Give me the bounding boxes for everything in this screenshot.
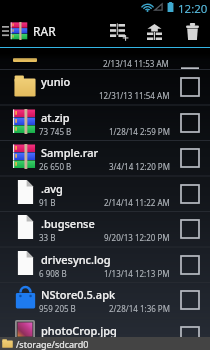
button[interactable]: .bugsense xyxy=(0,212,210,247)
button[interactable]: Add to archive xyxy=(99,15,137,47)
button[interactable]: Select Sample.rar xyxy=(181,149,199,167)
staticText: .avg xyxy=(41,181,63,196)
button[interactable]: Extract xyxy=(139,15,170,47)
staticText: 73 745 B xyxy=(39,126,72,137)
staticText: 959 205 B xyxy=(39,303,76,314)
staticText: RAR xyxy=(33,23,56,39)
staticText: 2/28/14 1:36 PM xyxy=(109,303,170,314)
button[interactable]: Select .bugsense xyxy=(181,220,199,238)
staticText: 6 908 B xyxy=(39,268,67,279)
staticText: .bugsense xyxy=(41,216,95,231)
staticText: 12/31/13 11:54 AM xyxy=(99,90,170,101)
button[interactable]: RAR xyxy=(0,15,56,47)
staticText: 1/28/14 2:59 PM xyxy=(109,126,170,137)
button[interactable]: Select yunio xyxy=(181,78,199,96)
staticText: at.zip xyxy=(41,110,70,125)
staticText: Sample.rar xyxy=(41,145,99,160)
staticText: 12:20 xyxy=(178,1,208,16)
staticText: NStore0.5.apk xyxy=(41,287,116,302)
button[interactable]: Delete xyxy=(178,15,206,47)
staticText: 3/4/14 12:20 PM xyxy=(109,161,170,172)
staticText: photoCrop.jpg xyxy=(41,323,117,338)
button[interactable]: Select at.zip xyxy=(181,114,199,132)
button[interactable]: Select photoCrop.jpg xyxy=(181,327,199,345)
button[interactable]: 2/13/14 11:53 AM xyxy=(0,48,210,69)
staticText: drivesync.log xyxy=(41,252,111,267)
staticText: 2/14/14 11:22 AM xyxy=(104,197,170,208)
button[interactable]: Select drivesync.log xyxy=(181,256,199,274)
button[interactable]: Sample.rar xyxy=(0,141,210,176)
staticText: 1/13/14 12:13 PM xyxy=(104,268,170,279)
staticText: yunio xyxy=(41,74,71,89)
button[interactable]: Select .avg xyxy=(181,185,199,203)
staticText: 33 B xyxy=(39,232,56,243)
button[interactable]: photoCrop.jpg xyxy=(0,319,210,350)
staticText: 91 B xyxy=(39,197,56,208)
button[interactable]: drivesync.log xyxy=(0,248,210,283)
staticText: /storage/sdcard0 xyxy=(16,338,89,350)
staticText: 26 650 B xyxy=(39,161,72,172)
button[interactable]: at.zip xyxy=(0,106,210,141)
staticText: 2/13/14 11:53 AM xyxy=(103,58,169,69)
button[interactable]: yunio xyxy=(0,70,210,105)
button[interactable]: /storage/sdcard0 xyxy=(0,337,210,350)
staticText: 9/20/13 12:20 PM xyxy=(104,232,170,243)
button[interactable]: .avg xyxy=(0,177,210,212)
button[interactable]: Select NStore0.5.apk xyxy=(181,291,199,309)
button[interactable]: NStore0.5.apk xyxy=(0,283,210,318)
